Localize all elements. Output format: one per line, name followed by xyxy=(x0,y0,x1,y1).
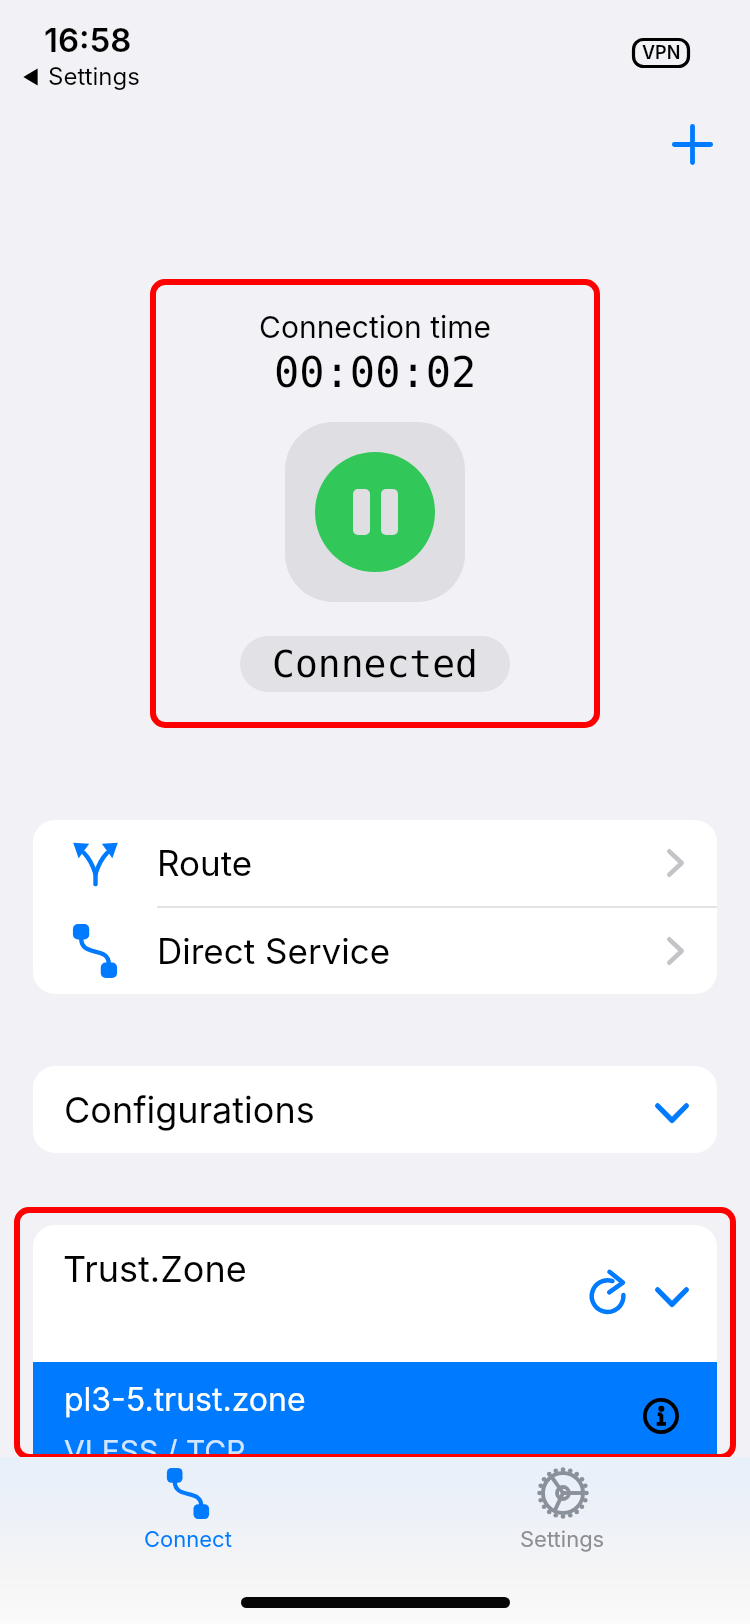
staticText: 16:58 xyxy=(44,20,132,60)
button[interactable]: Expand xyxy=(645,1274,699,1318)
button[interactable]: Refresh xyxy=(587,1268,631,1312)
button[interactable]: Back to Settings xyxy=(22,62,140,91)
staticText: Route xyxy=(157,842,253,884)
button[interactable]: Configurations xyxy=(33,1066,717,1153)
staticText: 00:00:02 xyxy=(274,348,477,397)
button[interactable]: Settings xyxy=(375,1457,750,1577)
button[interactable]: Direct Service xyxy=(33,908,717,994)
staticText: pl3-5.trust.zone xyxy=(64,1380,306,1419)
button[interactable]: Info xyxy=(642,1397,680,1435)
staticText: Settings xyxy=(48,62,140,91)
button[interactable]: pl3-5.trust.zone xyxy=(33,1362,717,1460)
button[interactable]: Route xyxy=(33,820,717,906)
staticText: Connected xyxy=(272,642,478,686)
staticText: VLESS / TCP xyxy=(64,1433,246,1460)
staticText: Connection time xyxy=(259,309,492,345)
staticText: Settings xyxy=(520,1526,605,1553)
staticText: Direct Service xyxy=(157,930,391,972)
staticText: Connect xyxy=(144,1526,232,1553)
staticText: Trust.Zone xyxy=(63,1247,247,1291)
button[interactable]: Connect xyxy=(0,1457,375,1577)
button[interactable]: Expand configurations xyxy=(648,1094,696,1130)
button[interactable]: Disconnect xyxy=(285,422,465,602)
staticText: VPN xyxy=(642,42,681,64)
staticText: Configurations xyxy=(64,1088,315,1132)
button[interactable]: Add configuration xyxy=(664,116,720,172)
